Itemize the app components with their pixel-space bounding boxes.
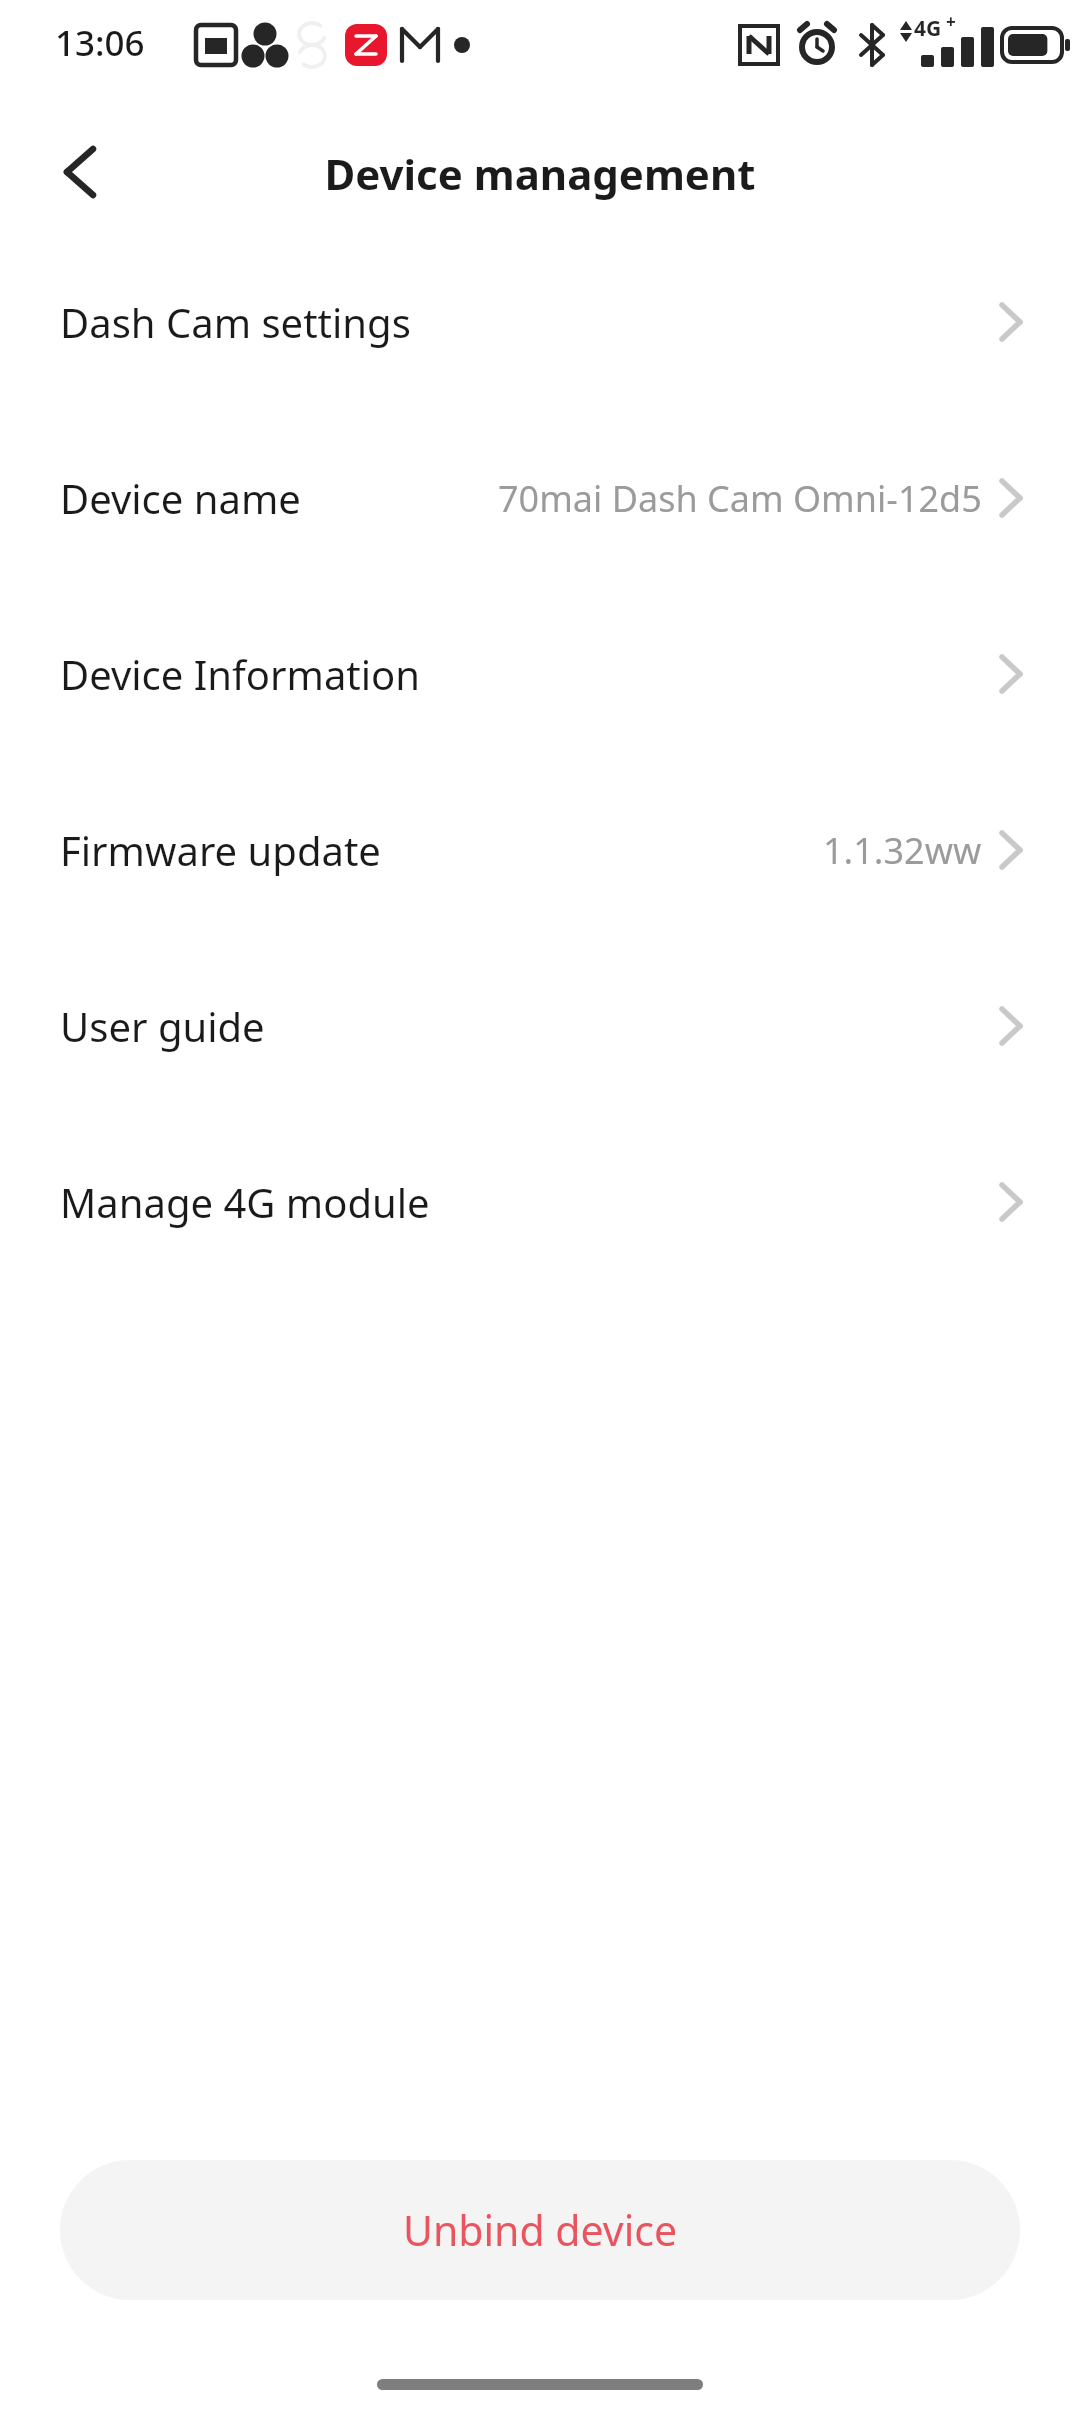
staticText: Device name — [60, 471, 301, 525]
button[interactable]: Device name — [0, 410, 1080, 586]
button[interactable]: Back — [30, 124, 126, 220]
staticText: 13:06 — [55, 19, 145, 67]
staticText: Device Information — [60, 647, 421, 701]
staticText: Dash Cam settings — [60, 295, 411, 349]
staticText: + — [946, 10, 956, 33]
staticText: 1.1.32ww — [823, 826, 982, 875]
staticText: Manage 4G module — [60, 1175, 430, 1229]
staticText: Device management — [0, 145, 1080, 202]
staticText: Unbind device — [403, 2202, 678, 2258]
button[interactable]: Device Information — [0, 586, 1080, 762]
staticText: 4G — [914, 14, 942, 43]
staticText: Firmware update — [60, 823, 381, 877]
button[interactable]: User guide — [0, 938, 1080, 1114]
button[interactable]: Unbind device — [60, 2160, 1020, 2300]
staticText: 70mai Dash Cam Omni-12d5 — [498, 474, 982, 523]
button[interactable]: Dash Cam settings — [0, 234, 1080, 410]
staticText: User guide — [60, 999, 265, 1053]
button[interactable]: Manage 4G module — [0, 1114, 1080, 1290]
button[interactable]: Firmware update — [0, 762, 1080, 938]
